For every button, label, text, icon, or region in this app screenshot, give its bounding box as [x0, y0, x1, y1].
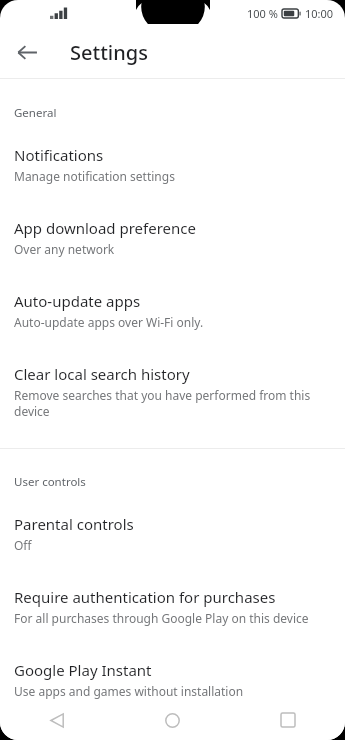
staticText: Notifications: [14, 145, 104, 165]
button[interactable]: Back: [0, 700, 115, 740]
staticText: Clear local search history: [14, 364, 190, 384]
button[interactable]: Clear local search history: [0, 364, 345, 419]
staticText: Settings: [70, 39, 148, 66]
staticText: Manage notification settings: [14, 168, 175, 184]
button[interactable]: Home: [115, 700, 230, 740]
staticText: Parental controls: [14, 514, 134, 534]
staticText: Auto-update apps: [14, 291, 141, 311]
button[interactable]: App download preference: [0, 218, 345, 257]
staticText: Remove searches that you have performed …: [14, 387, 327, 419]
staticText: Off: [14, 537, 32, 553]
staticText: For all purchases through Google Play on…: [14, 610, 309, 626]
button[interactable]: Parental controls: [0, 514, 345, 553]
button[interactable]: Notifications: [0, 145, 345, 184]
staticText: Over any network: [14, 241, 115, 257]
staticText: 100 %: [247, 6, 278, 21]
button[interactable]: Google Play Instant: [0, 660, 345, 699]
button[interactable]: Back: [8, 33, 46, 71]
staticText: General: [14, 105, 345, 121]
staticText: Require authentication for purchases: [14, 587, 276, 607]
staticText: User controls: [14, 474, 345, 490]
staticText: Use apps and games without installation: [14, 683, 244, 699]
staticText: Auto-update apps over Wi-Fi only.: [14, 314, 204, 330]
staticText: 10:00: [305, 6, 334, 21]
staticText: Google Play Instant: [14, 660, 152, 680]
staticText: App download preference: [14, 218, 196, 238]
button[interactable]: Auto-update apps: [0, 291, 345, 330]
button[interactable]: Require authentication for purchases: [0, 587, 345, 626]
button[interactable]: Recent apps: [230, 700, 345, 740]
